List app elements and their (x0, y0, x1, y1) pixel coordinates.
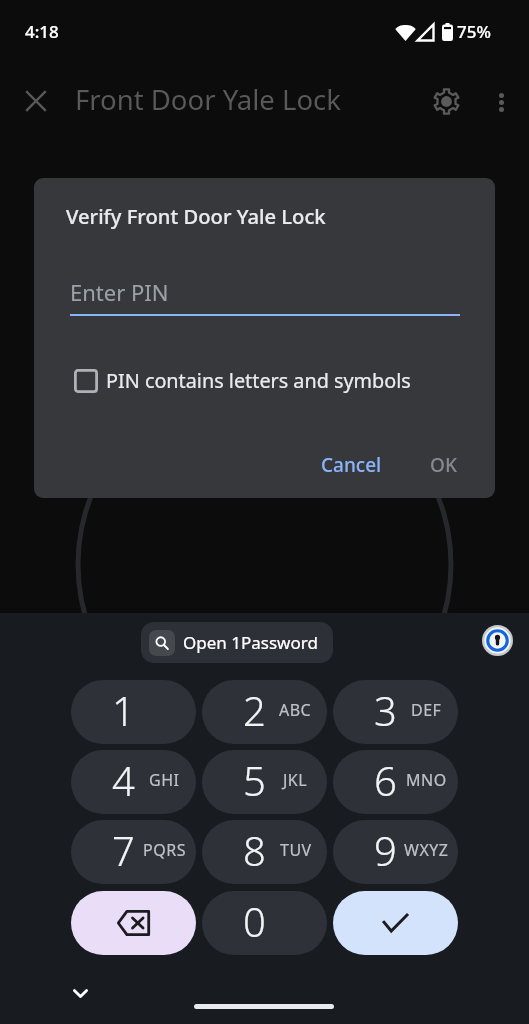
staticText: 75% (457, 20, 491, 43)
button[interactable]: Cancel (305, 442, 398, 488)
staticText: GHI (149, 769, 180, 791)
button[interactable]: 0 (202, 891, 327, 955)
staticText: 2 (243, 683, 266, 737)
button[interactable]: 3 (333, 680, 458, 744)
button[interactable]: PIN contains letters and symbols (66, 363, 419, 398)
button[interactable]: 5 (202, 750, 327, 814)
button[interactable]: 8 (202, 820, 327, 884)
staticText: 8 (243, 823, 266, 877)
staticText: 4 (112, 753, 135, 807)
button[interactable]: Hide keyboard (58, 971, 102, 1015)
staticText: Enter PIN (70, 277, 169, 307)
staticText: 7 (112, 823, 135, 877)
staticText: PIN contains letters and symbols (106, 367, 411, 394)
staticText: PQRS (143, 839, 186, 861)
button[interactable]: 4 (71, 750, 196, 814)
button[interactable]: Open 1Password (141, 622, 333, 663)
button[interactable]: 9 (333, 820, 458, 884)
button[interactable]: 6 (333, 750, 458, 814)
staticText: 5 (243, 753, 266, 807)
staticText: MNO (406, 769, 447, 791)
staticText: ABC (279, 699, 312, 721)
staticText: Open 1Password (183, 631, 318, 654)
staticText: OK (430, 452, 457, 478)
button[interactable]: OK (414, 442, 473, 488)
staticText: 1 (112, 683, 135, 737)
button[interactable]: 7 (71, 820, 196, 884)
staticText: DEF (411, 699, 442, 721)
staticText: Front Door Yale Lock (75, 81, 341, 118)
staticText: 6 (374, 753, 397, 807)
button[interactable]: 2 (202, 680, 327, 744)
button[interactable]: More options (477, 77, 525, 125)
staticText: 0 (243, 894, 266, 948)
button[interactable]: Backspace (71, 891, 196, 955)
staticText: 4:18 (25, 20, 59, 43)
staticText: WXYZ (404, 839, 449, 861)
button[interactable]: 1 (71, 680, 196, 744)
button[interactable]: Enter (333, 891, 458, 955)
staticText: JKL (283, 769, 308, 791)
button[interactable]: 1Password (482, 625, 513, 656)
staticText: TUV (280, 839, 312, 861)
staticText: 3 (374, 683, 397, 737)
button[interactable]: Settings (422, 77, 470, 125)
staticText: Verify Front Door Yale Lock (66, 202, 326, 230)
staticText: Cancel (321, 452, 382, 478)
staticText: 9 (374, 823, 397, 877)
button[interactable]: Close (12, 77, 60, 125)
